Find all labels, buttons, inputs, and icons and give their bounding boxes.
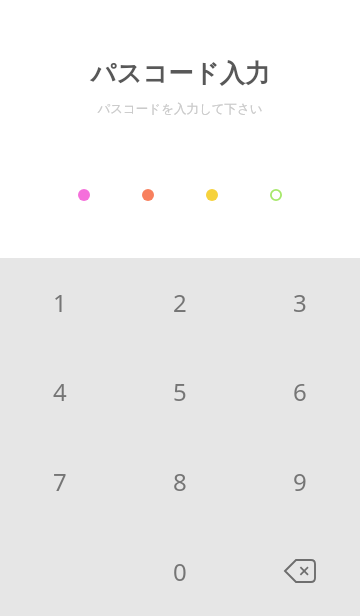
button[interactable]: 5 <box>120 347 240 436</box>
button[interactable]: 3 <box>240 258 360 347</box>
staticText: 7 <box>53 465 67 498</box>
button[interactable]: 9 <box>240 436 360 526</box>
button[interactable]: 4 <box>0 347 120 436</box>
staticText: 0 <box>173 555 187 588</box>
staticText: 1 <box>53 286 67 319</box>
staticText: 9 <box>293 465 307 498</box>
button[interactable]: 0 <box>120 526 240 616</box>
staticText: パスコード入力 <box>90 58 271 89</box>
staticText: 4 <box>53 375 67 408</box>
button[interactable]: 7 <box>0 436 120 526</box>
button[interactable]: 6 <box>240 347 360 436</box>
staticText: 3 <box>293 286 307 319</box>
button[interactable]: 1 <box>0 258 120 347</box>
staticText: 5 <box>173 375 187 408</box>
button[interactable]: 8 <box>120 436 240 526</box>
staticText: 8 <box>173 465 187 498</box>
staticText: パスコードを入力して下さい <box>97 101 263 117</box>
staticText: 6 <box>293 375 307 408</box>
button[interactable]: Delete <box>240 526 360 616</box>
staticText: 2 <box>173 286 187 319</box>
button[interactable]: 2 <box>120 258 240 347</box>
